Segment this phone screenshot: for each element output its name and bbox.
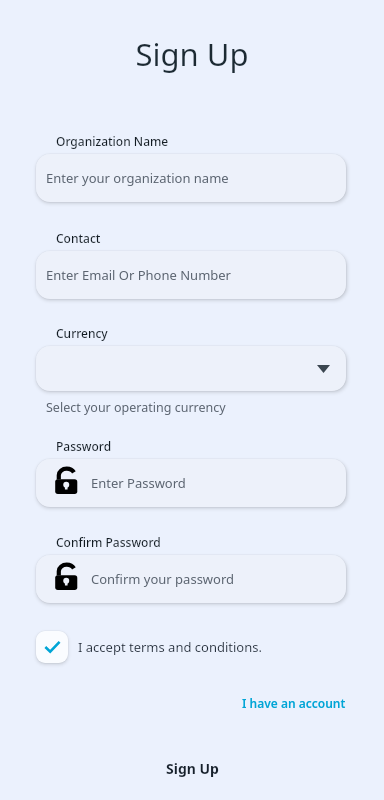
staticText: Select your operating currency (46, 399, 226, 416)
staticText: Enter Email Or Phone Number (46, 266, 231, 284)
button[interactable]: Enter Password (36, 459, 346, 507)
button[interactable]: Confirm your password (36, 555, 346, 603)
staticText: Confirm Password (56, 534, 161, 550)
staticText: Enter Password (91, 474, 186, 492)
staticText: Contact (56, 230, 101, 246)
staticText: Currency (56, 325, 108, 341)
button[interactable]: Select currency (36, 346, 346, 391)
button[interactable]: Enter your organization name (36, 154, 346, 202)
staticText: Sign Up (166, 759, 219, 778)
staticText: Sign Up (0, 33, 384, 75)
button[interactable]: Sign Up (0, 751, 384, 785)
button[interactable]: Enter Email Or Phone Number (36, 251, 346, 299)
staticText: Organization Name (56, 133, 169, 149)
staticText: Confirm your password (91, 570, 235, 588)
staticText: Password (56, 438, 112, 454)
staticText: Enter your organization name (46, 169, 229, 187)
button[interactable]: I have an account (242, 695, 346, 711)
staticText: I accept terms and conditions. (78, 638, 262, 656)
button[interactable]: I accept terms and conditions. (36, 631, 274, 663)
